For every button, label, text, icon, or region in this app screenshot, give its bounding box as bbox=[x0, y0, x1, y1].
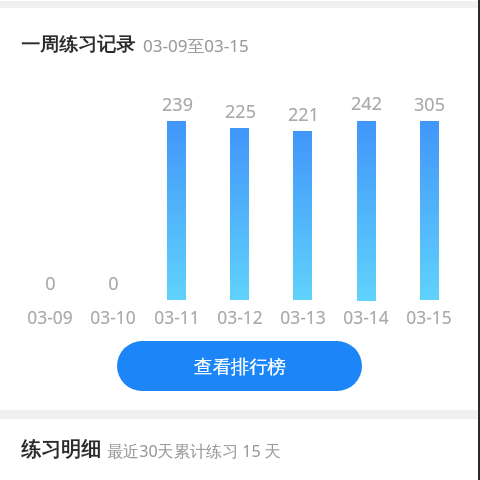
staticText: 03-12 bbox=[217, 305, 263, 329]
staticText: 0 bbox=[45, 271, 56, 296]
staticText: 03-09 bbox=[27, 305, 73, 329]
button[interactable]: 一周练习记录 bbox=[0, 22, 480, 58]
button[interactable]: 练习明细 bbox=[0, 426, 480, 466]
staticText: 03-10 bbox=[90, 305, 136, 329]
staticText: 221 bbox=[288, 102, 319, 127]
staticText: 239 bbox=[162, 92, 193, 117]
staticText: 0 bbox=[108, 271, 119, 296]
staticText: 最近30天累计练习 15 天 bbox=[107, 440, 281, 462]
staticText: 242 bbox=[351, 91, 382, 116]
staticText: 225 bbox=[225, 99, 256, 124]
staticText: 305 bbox=[414, 92, 445, 117]
staticText: 03-11 bbox=[154, 305, 200, 329]
staticText: 03-09至03-15 bbox=[143, 34, 249, 57]
button[interactable]: 查看排行榜 bbox=[117, 341, 362, 391]
staticText: 03-15 bbox=[406, 305, 452, 329]
staticText: 查看排行榜 bbox=[194, 355, 286, 378]
staticText: 03-13 bbox=[280, 305, 326, 329]
staticText: 一周练习记录 bbox=[21, 33, 135, 57]
staticText: 03-14 bbox=[343, 305, 389, 329]
staticText: 练习明细 bbox=[21, 437, 101, 462]
